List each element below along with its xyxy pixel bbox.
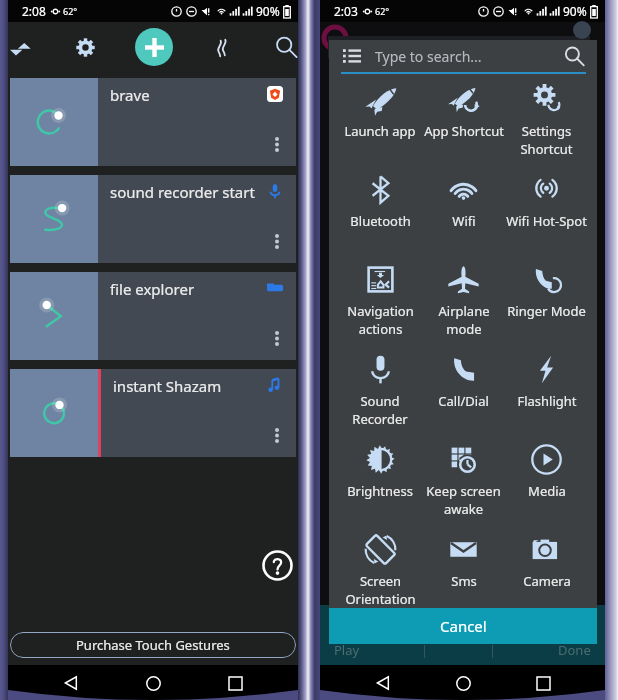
button[interactable]: Search [265, 26, 307, 68]
staticText: Airplane mode [438, 302, 490, 338]
button[interactable]: Launch app [338, 80, 422, 170]
button[interactable]: Back [368, 668, 398, 698]
staticText: Navigation actions [347, 302, 414, 338]
staticText: instant Shazam [113, 376, 222, 396]
button[interactable]: Sms [422, 530, 505, 608]
button[interactable]: Help [262, 550, 293, 581]
staticText: Launch app [344, 122, 416, 140]
button[interactable]: App Shortcut [422, 80, 505, 170]
button[interactable]: Wifi Hot-Spot [505, 170, 588, 260]
staticText: Settings Shortcut [520, 122, 573, 158]
staticText: Type to search... [375, 47, 564, 66]
staticText: App Shortcut [424, 122, 504, 140]
button[interactable]: Airplane mode [422, 260, 505, 350]
staticText: Sound Recorder [352, 392, 408, 428]
button[interactable]: Back [56, 668, 86, 698]
button[interactable]: Recents [220, 668, 250, 698]
button[interactable]: More options [270, 428, 284, 443]
staticText: 90% [256, 3, 280, 19]
staticText: Media [528, 482, 566, 500]
button[interactable]: brave [10, 78, 296, 166]
button[interactable]: Wifi [422, 170, 505, 260]
button[interactable]: Navigation actions [338, 260, 422, 350]
staticText: | [489, 641, 497, 659]
button[interactable]: Cancel [329, 608, 597, 644]
staticText: brave [110, 85, 150, 105]
button[interactable]: sound recorder start [10, 175, 296, 263]
button[interactable]: Recents [528, 668, 558, 698]
button[interactable]: Home [138, 668, 168, 698]
button[interactable]: Sound Recorder [338, 350, 422, 440]
button[interactable]: More options [270, 234, 284, 249]
button[interactable]: Brightness [338, 440, 422, 530]
staticText: Ringer Mode [507, 302, 586, 320]
staticText: 62° [63, 5, 78, 17]
staticText: Screen Orientation [345, 572, 416, 608]
button[interactable]: Ringer Mode [505, 260, 588, 350]
button[interactable]: Bluetooth [338, 170, 422, 260]
staticText: Play [334, 641, 360, 659]
staticText: 62° [375, 5, 390, 17]
staticText: Camera [523, 572, 571, 590]
staticText: file explorer [110, 279, 195, 299]
button[interactable]: Gestures [201, 26, 243, 68]
button[interactable]: Settings [64, 26, 106, 68]
button[interactable]: Keep screen awake [422, 440, 505, 530]
staticText: Wifi [452, 212, 476, 230]
button[interactable]: Call/Dial [422, 350, 505, 440]
staticText: Call/Dial [438, 392, 489, 410]
button[interactable]: Flashlight [505, 350, 588, 440]
button[interactable]: Sort [0, 26, 42, 68]
staticText: Wifi Hot-Spot [506, 212, 587, 230]
button[interactable]: Add gesture [135, 28, 173, 66]
staticText: sound recorder start [110, 182, 255, 202]
button[interactable]: instant Shazam [10, 369, 296, 457]
staticText: Done [558, 641, 591, 659]
staticText: Brightness [347, 482, 413, 500]
button[interactable]: Media [505, 440, 588, 530]
staticText: 2:03 [334, 3, 358, 19]
button[interactable]: Home [448, 668, 478, 698]
button[interactable]: Purchase Touch Gestures [10, 632, 296, 658]
staticText: Bluetooth [350, 212, 411, 230]
staticText: Cancel [440, 616, 487, 636]
button[interactable]: More options [270, 137, 284, 152]
staticText: Flashlight [517, 392, 577, 410]
button[interactable]: Screen Orientation [338, 530, 422, 608]
button[interactable]: file explorer [10, 272, 296, 360]
staticText: Sms [451, 572, 477, 590]
button[interactable]: More options [270, 331, 284, 346]
staticText: | [421, 641, 429, 659]
staticText: Keep screen awake [426, 482, 501, 518]
staticText: 90% [563, 3, 587, 19]
staticText: 2:08 [22, 3, 46, 19]
button[interactable]: Camera [505, 530, 588, 608]
staticText: Purchase Touch Gestures [76, 636, 230, 654]
button[interactable]: Settings Shortcut [505, 80, 588, 170]
